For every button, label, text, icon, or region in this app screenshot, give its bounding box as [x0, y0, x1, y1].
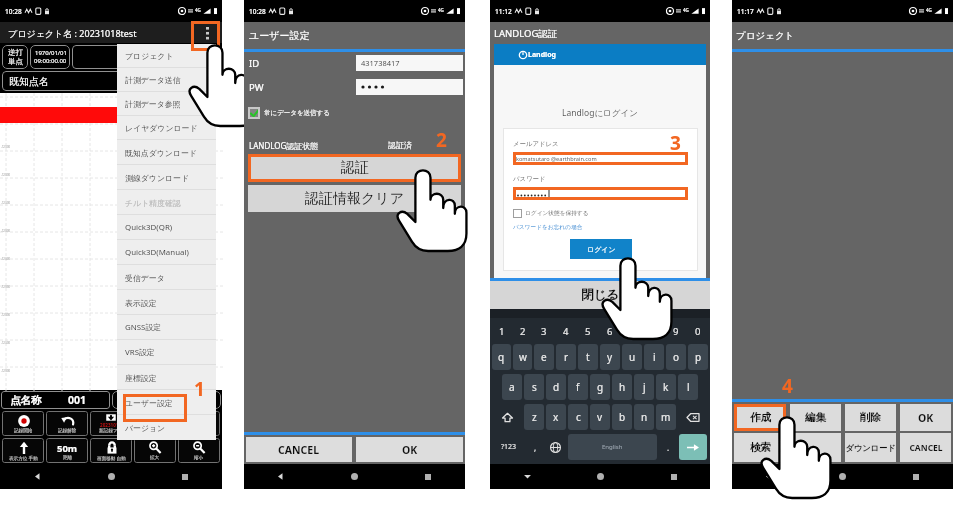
button[interactable]: 画面移動 自動 — [90, 438, 132, 463]
button[interactable]: u — [622, 344, 642, 370]
button[interactable]: English — [568, 434, 657, 460]
button[interactable]: 1970/01/01 — [30, 45, 70, 69]
button[interactable]: 削除 — [845, 404, 896, 431]
button[interactable]: Back — [0, 464, 74, 489]
button[interactable]: b — [612, 404, 632, 430]
button[interactable]: 1 — [491, 320, 512, 342]
button[interactable]: 8 — [643, 320, 665, 342]
button[interactable]: Quick3D(Manual) — [117, 240, 216, 265]
button[interactable]: More options — [200, 26, 214, 40]
button[interactable]: Back — [732, 464, 805, 489]
button[interactable]: 9 — [665, 320, 687, 342]
button[interactable]: y — [600, 344, 620, 370]
button[interactable]: . — [661, 434, 675, 460]
button[interactable]: 検索 — [734, 433, 786, 462]
button[interactable]: ?123 — [493, 434, 524, 460]
button[interactable]: Quick3D(QR) — [117, 215, 216, 240]
button[interactable]: Backspace — [679, 404, 707, 430]
button[interactable] — [790, 433, 841, 462]
button[interactable]: Recents — [148, 464, 222, 489]
button[interactable]: ユーザー設定 — [117, 390, 216, 415]
button[interactable]: 編集 — [790, 404, 841, 431]
button[interactable]: o — [666, 344, 686, 370]
button[interactable]: OK — [356, 437, 463, 462]
button[interactable]: 認証 — [248, 154, 461, 182]
button[interactable]: 点名称 — [1, 391, 110, 409]
button[interactable]: 縮小 — [178, 438, 220, 463]
button[interactable]: Enter — [679, 434, 707, 460]
button[interactable]: 6 — [599, 320, 621, 342]
button[interactable]: n — [634, 404, 654, 430]
button[interactable]: r — [556, 344, 576, 370]
button[interactable] — [356, 79, 463, 95]
button[interactable]: f — [568, 374, 588, 400]
button[interactable]: 431738417 — [356, 55, 463, 71]
button[interactable]: Back — [490, 464, 564, 489]
button[interactable]: 表示設定 — [117, 290, 216, 315]
button[interactable]: w — [513, 344, 532, 370]
button[interactable]: 既知点ダウンロード — [117, 140, 216, 165]
button[interactable]: 受信データ — [117, 265, 216, 290]
button[interactable]: m — [656, 404, 676, 430]
button[interactable]: 作成 — [734, 404, 786, 431]
button[interactable]: 計測データ送信 — [117, 68, 216, 92]
button[interactable]: a — [502, 374, 522, 400]
button[interactable]: 0 — [687, 320, 709, 342]
button[interactable]: Home — [74, 464, 148, 489]
button[interactable]: 認証情報クリア — [248, 185, 461, 212]
button[interactable]: チルト精度確認 — [117, 190, 216, 215]
button[interactable]: Home — [564, 464, 637, 489]
button[interactable] — [72, 45, 220, 69]
button[interactable]: c — [568, 404, 588, 430]
button[interactable]: バージョン — [117, 415, 216, 440]
button[interactable]: v — [590, 404, 610, 430]
button[interactable]: 計測データ参照 — [117, 92, 216, 116]
button[interactable]: q — [492, 344, 511, 370]
button[interactable]: ログイン — [570, 239, 632, 259]
button[interactable]: CANCEL — [246, 437, 352, 462]
button[interactable]: 記録開始 — [2, 411, 44, 436]
button[interactable]: 記録解除 — [46, 411, 88, 436]
button[interactable]: レイヤダウンロード — [117, 116, 216, 140]
button[interactable]: h — [612, 374, 632, 400]
button[interactable]: 測線ダウンロード — [117, 165, 216, 190]
button[interactable]: s — [524, 374, 544, 400]
button[interactable]: t — [578, 344, 598, 370]
button[interactable]: CANCEL — [900, 433, 951, 462]
button[interactable]: 7 — [621, 320, 643, 342]
button[interactable] — [513, 209, 522, 218]
button[interactable]: x — [546, 404, 566, 430]
button[interactable]: 3 — [533, 320, 555, 342]
button[interactable]: d — [546, 374, 566, 400]
button[interactable]: Recents — [637, 464, 710, 489]
button[interactable]: 既知点名 — [2, 71, 220, 91]
button[interactable]: , — [528, 434, 542, 460]
button[interactable]: e — [534, 344, 554, 370]
button[interactable]: 座標設定 — [117, 365, 216, 390]
button[interactable]: 20231017 — [90, 411, 132, 436]
button[interactable]: Recents — [391, 464, 465, 489]
button[interactable]: i — [644, 344, 664, 370]
button[interactable]: Recents — [879, 464, 953, 489]
button[interactable]: Home — [805, 464, 879, 489]
button[interactable]: Language — [546, 434, 564, 460]
button[interactable] — [112, 391, 221, 409]
button[interactable]: z — [524, 404, 544, 430]
button[interactable]: k — [656, 374, 676, 400]
button[interactable]: GNSS設定 — [117, 315, 216, 340]
button[interactable]: 4 — [555, 320, 577, 342]
button[interactable]: Shift — [493, 404, 521, 430]
button[interactable]: p — [688, 344, 708, 370]
button[interactable]: 2 — [512, 320, 533, 342]
button[interactable]: 縮小 — [178, 411, 220, 436]
button[interactable]: 拡大 — [134, 411, 176, 436]
button[interactable]: ダウンロード — [845, 433, 896, 462]
button[interactable]: プロジェクト — [117, 44, 216, 68]
button[interactable]: g — [590, 374, 610, 400]
button[interactable]: 逆打 — [2, 45, 28, 69]
button[interactable]: 拡大 — [134, 438, 176, 463]
button[interactable] — [248, 107, 260, 119]
button[interactable]: j — [634, 374, 654, 400]
button[interactable]: l — [678, 374, 698, 400]
button[interactable]: OK — [900, 404, 951, 431]
